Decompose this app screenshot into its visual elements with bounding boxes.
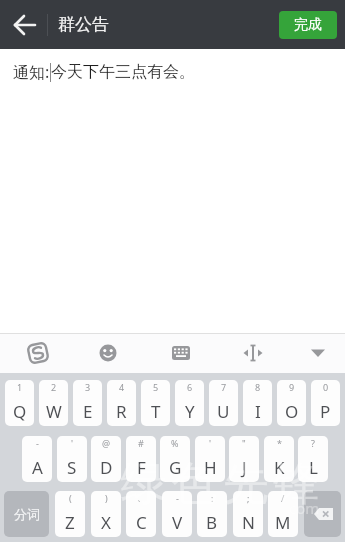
- staticText: J: [242, 456, 247, 479]
- staticText: /: [281, 492, 285, 504]
- staticText: 分词: [14, 506, 40, 522]
- staticText: 通知:: [13, 61, 50, 83]
- staticText: ": [242, 437, 246, 449]
- staticText: *: [277, 437, 282, 449]
- button[interactable]: 分词: [4, 491, 49, 537]
- button[interactable]: 9: [277, 380, 306, 426]
- button[interactable]: [19, 334, 57, 372]
- staticText: K: [274, 456, 285, 479]
- staticText: Y: [185, 400, 195, 423]
- staticText: X: [101, 511, 111, 534]
- button[interactable]: (: [55, 491, 85, 537]
- staticText: 6: [187, 381, 193, 393]
- button[interactable]: [299, 334, 337, 372]
- staticText: -: [176, 492, 179, 504]
- staticText: ': [209, 437, 212, 449]
- staticText: ): [105, 492, 108, 504]
- staticText: 2: [51, 381, 57, 393]
- staticText: R: [116, 400, 127, 423]
- button[interactable]: 0: [311, 380, 340, 426]
- staticText: 7: [221, 381, 227, 393]
- button[interactable]: %: [160, 436, 190, 482]
- button[interactable]: 8: [243, 380, 272, 426]
- staticText: W: [46, 400, 62, 423]
- staticText: C: [136, 511, 147, 534]
- staticText: -: [36, 437, 39, 449]
- staticText: 完成: [294, 16, 322, 34]
- staticText: 3: [85, 381, 91, 393]
- staticText: B: [206, 511, 218, 534]
- staticText: Z: [65, 511, 75, 534]
- staticText: G: [169, 456, 182, 479]
- staticText: O: [285, 400, 299, 423]
- staticText: ;: [247, 492, 250, 504]
- button[interactable]: 6: [175, 380, 204, 426]
- button[interactable]: ): [91, 491, 121, 537]
- staticText: 群公告: [58, 14, 109, 35]
- staticText: ?: [311, 437, 315, 449]
- staticText: 绿色先锋: [118, 455, 322, 513]
- staticText: A: [32, 456, 43, 479]
- button[interactable]: [162, 334, 200, 372]
- button[interactable]: [304, 491, 341, 537]
- staticText: P: [320, 400, 331, 423]
- staticText: L: [309, 456, 318, 479]
- button[interactable]: 7: [209, 380, 238, 426]
- staticText: %: [171, 437, 179, 449]
- button[interactable]: 5: [141, 380, 170, 426]
- staticText: #: [138, 437, 144, 449]
- staticText: 、: [137, 492, 146, 503]
- staticText: 9: [289, 381, 295, 393]
- staticText: (: [69, 492, 72, 504]
- staticText: .com: [285, 498, 320, 518]
- button[interactable]: [89, 334, 127, 372]
- staticText: :: [211, 492, 214, 504]
- staticText: 5: [153, 381, 159, 393]
- button[interactable]: ?: [298, 436, 328, 482]
- button[interactable]: ;: [233, 491, 263, 537]
- button[interactable]: -: [22, 436, 52, 482]
- button[interactable]: ': [195, 436, 225, 482]
- staticText: M: [275, 511, 291, 534]
- button[interactable]: -: [162, 491, 192, 537]
- button[interactable]: 1: [5, 380, 34, 426]
- staticText: 1: [17, 381, 23, 393]
- button[interactable]: :: [197, 491, 227, 537]
- button[interactable]: 4: [107, 380, 136, 426]
- button[interactable]: #: [126, 436, 156, 482]
- staticText: @: [102, 437, 111, 449]
- staticText: 4: [119, 381, 125, 393]
- button[interactable]: 2: [39, 380, 68, 426]
- staticText: T: [151, 400, 161, 423]
- staticText: 今天下午三点有会。: [51, 62, 195, 82]
- button[interactable]: 、: [126, 491, 156, 537]
- button[interactable]: 完成: [279, 11, 337, 39]
- staticText: N: [242, 511, 255, 534]
- staticText: 0: [323, 381, 329, 393]
- staticText: Q: [13, 400, 27, 423]
- button[interactable]: [0, 0, 49, 49]
- button[interactable]: ': [57, 436, 87, 482]
- button[interactable]: *: [264, 436, 294, 482]
- staticText: H: [204, 456, 217, 479]
- button[interactable]: /: [268, 491, 298, 537]
- staticText: D: [100, 456, 113, 479]
- button[interactable]: [234, 334, 272, 372]
- staticText: F: [137, 456, 146, 479]
- button[interactable]: 3: [73, 380, 102, 426]
- staticText: ': [71, 437, 74, 449]
- staticText: 8: [255, 381, 261, 393]
- staticText: S: [67, 456, 77, 479]
- staticText: E: [83, 400, 93, 423]
- button[interactable]: @: [91, 436, 121, 482]
- staticText: I: [255, 400, 261, 423]
- staticText: V: [172, 511, 183, 534]
- button[interactable]: ": [229, 436, 259, 482]
- staticText: U: [217, 400, 230, 423]
